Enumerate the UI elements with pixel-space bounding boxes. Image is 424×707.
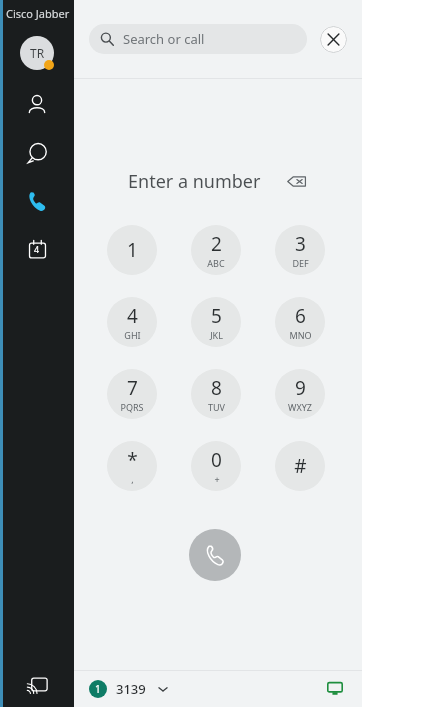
button[interactable]: 5 bbox=[191, 297, 241, 347]
staticText: 0 bbox=[211, 447, 222, 473]
staticText: 3 bbox=[295, 231, 306, 257]
staticText: 7 bbox=[127, 375, 138, 401]
button[interactable]: Close bbox=[320, 26, 347, 53]
button[interactable]: Device selection bbox=[323, 677, 347, 701]
staticText: 1 bbox=[127, 237, 138, 263]
button[interactable]: 9 bbox=[275, 369, 325, 419]
staticText: + bbox=[214, 473, 220, 485]
staticText: TR bbox=[30, 45, 45, 61]
staticText: Enter a number bbox=[128, 169, 261, 194]
button[interactable]: 1 bbox=[107, 225, 157, 275]
button[interactable]: 0 bbox=[191, 441, 241, 491]
button[interactable]: Share screen bbox=[20, 669, 54, 703]
staticText: 8 bbox=[211, 375, 222, 401]
button[interactable]: Profile TR bbox=[20, 36, 54, 70]
button[interactable]: Calls bbox=[20, 184, 54, 218]
button[interactable]: Contacts bbox=[20, 88, 54, 122]
button[interactable]: Call bbox=[189, 529, 241, 581]
button[interactable]: 3 bbox=[275, 225, 325, 275]
staticText: 5 bbox=[211, 303, 222, 329]
staticText: 3139 bbox=[116, 680, 146, 698]
button[interactable]: Search or call bbox=[89, 24, 307, 54]
staticText: DEF bbox=[292, 257, 309, 269]
button[interactable]: 1 bbox=[89, 680, 169, 698]
staticText: 4 bbox=[34, 243, 40, 255]
button[interactable]: 8 bbox=[191, 369, 241, 419]
button[interactable]: Chats bbox=[20, 136, 54, 170]
staticText: MNO bbox=[289, 329, 312, 341]
staticText: TUV bbox=[208, 401, 225, 413]
staticText: WXYZ bbox=[288, 401, 312, 413]
staticText: PQRS bbox=[120, 401, 144, 413]
button[interactable]: # bbox=[275, 441, 325, 491]
staticText: ABC bbox=[207, 257, 225, 269]
button[interactable]: Meetings bbox=[20, 232, 54, 266]
staticText: 1 bbox=[95, 682, 101, 696]
button[interactable]: * bbox=[107, 441, 157, 491]
staticText: # bbox=[294, 453, 307, 479]
staticText: Search or call bbox=[123, 30, 205, 48]
staticText: 6 bbox=[295, 303, 306, 329]
staticText: JKL bbox=[210, 329, 223, 341]
staticText: 4 bbox=[127, 303, 138, 329]
button[interactable]: Backspace bbox=[283, 168, 309, 194]
button[interactable]: 4 bbox=[107, 297, 157, 347]
staticText: GHI bbox=[124, 329, 141, 341]
staticText: Cisco Jabber bbox=[6, 6, 70, 21]
staticText: , bbox=[131, 473, 134, 485]
staticText: 9 bbox=[295, 375, 306, 401]
button[interactable]: 6 bbox=[275, 297, 325, 347]
staticText: 2 bbox=[211, 231, 222, 257]
button[interactable]: 2 bbox=[191, 225, 241, 275]
staticText: * bbox=[127, 447, 138, 473]
button[interactable]: 7 bbox=[107, 369, 157, 419]
